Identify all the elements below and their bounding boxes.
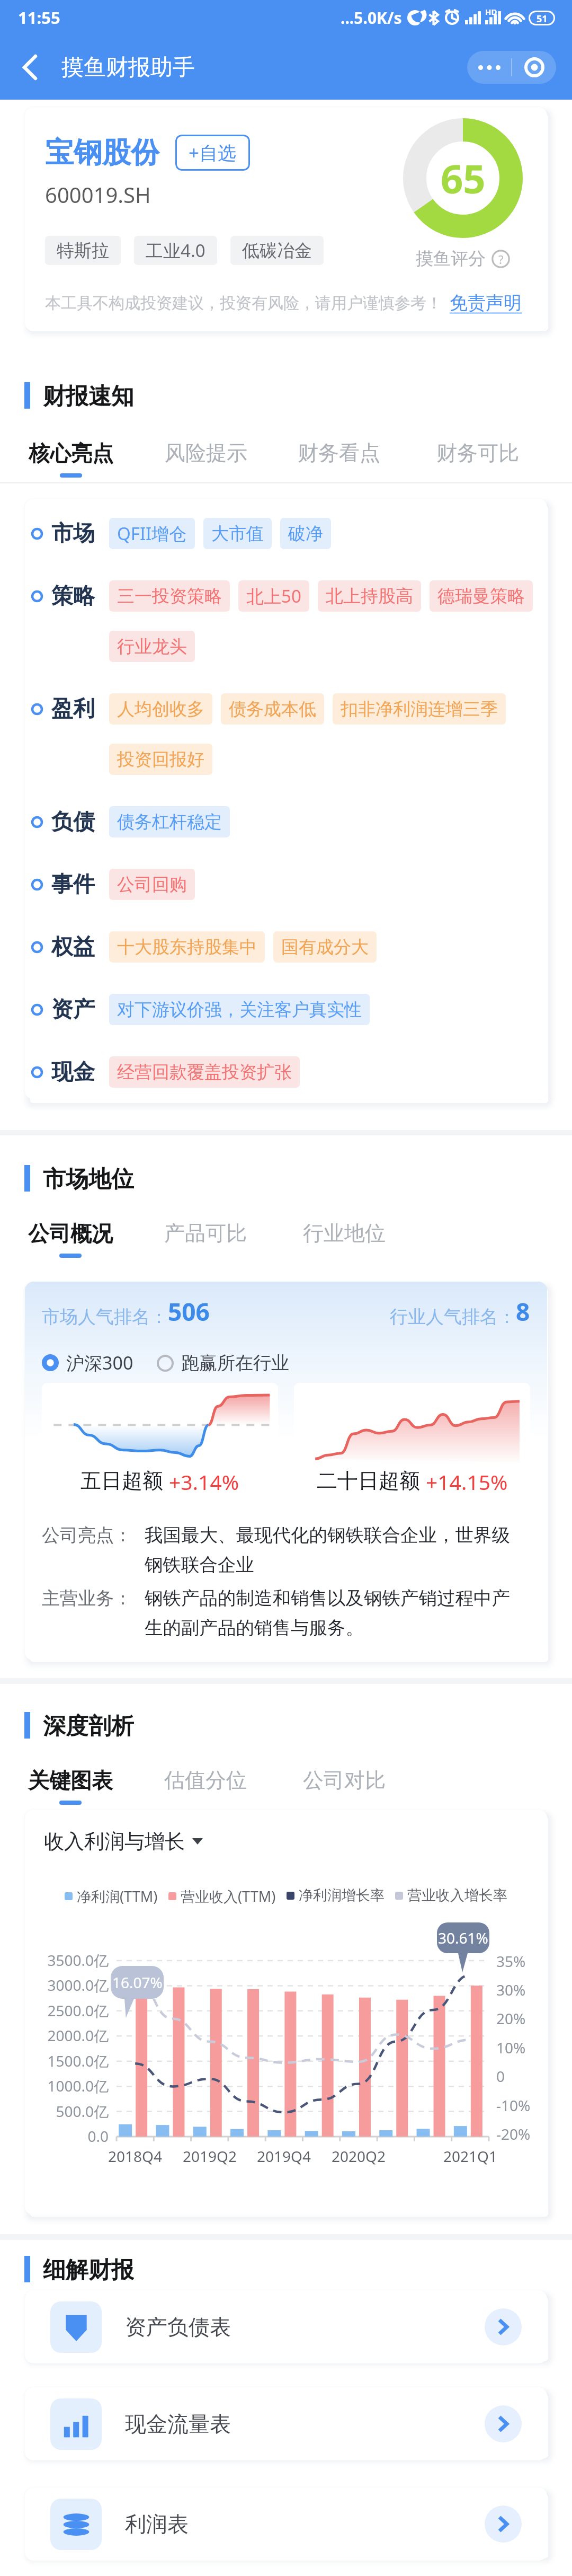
- button[interactable]: QFII增仓: [109, 518, 195, 549]
- staticText: 现金: [51, 1058, 95, 1086]
- staticText: 国有成分大: [281, 936, 369, 958]
- button[interactable]: Help: [491, 250, 510, 268]
- button[interactable]: 沪深300: [42, 1351, 133, 1375]
- button[interactable]: 破净: [280, 518, 331, 549]
- staticText: 2500.0亿: [30, 2000, 109, 2021]
- staticText: 债务杠杆稳定: [117, 811, 222, 833]
- button[interactable]: 二十日超额: [294, 1383, 530, 1503]
- staticText: 低碳冶金: [242, 240, 312, 262]
- staticText: 1000.0亿: [30, 2076, 109, 2096]
- button[interactable]: 扣非净利润连增三季: [333, 693, 506, 725]
- button[interactable]: 德瑞曼策略: [430, 580, 533, 612]
- staticText: 资产负债表: [125, 2314, 231, 2340]
- button[interactable]: 债务成本低: [221, 693, 324, 725]
- staticText: 市场地位: [43, 1165, 134, 1192]
- staticText: 人均创收多: [117, 698, 204, 720]
- button[interactable]: 对下游议价强，关注客户真实性: [109, 994, 370, 1025]
- button[interactable]: More options: [467, 51, 511, 84]
- staticText: 2000.0亿: [30, 2025, 109, 2045]
- staticText: 2019Q2: [178, 2146, 242, 2166]
- button[interactable]: Back: [11, 48, 49, 86]
- staticText: 现金流量表: [125, 2411, 231, 2437]
- staticText: -10%: [496, 2095, 539, 2115]
- staticText: 0: [496, 2066, 539, 2086]
- staticText: 十大股东持股集中: [117, 936, 257, 958]
- button[interactable]: 特斯拉: [45, 236, 121, 265]
- button[interactable]: 三一投资策略: [109, 580, 230, 612]
- staticText: 五日超额: [81, 1468, 163, 1494]
- button[interactable]: 北上持股高: [318, 580, 421, 612]
- button[interactable]: Close: [512, 51, 556, 84]
- staticText: 3000.0亿: [30, 1975, 109, 1995]
- button[interactable]: 经营回款覆盖投资扩张: [109, 1056, 300, 1088]
- button[interactable]: 北上50: [238, 580, 309, 612]
- staticText: 市场: [51, 520, 95, 548]
- staticText: 免责声明: [450, 292, 522, 314]
- staticText: 财务可比: [436, 440, 519, 466]
- staticText: 2021Q1: [439, 2146, 502, 2166]
- staticText: 公司对比: [303, 1767, 386, 1793]
- staticText: 2020Q2: [327, 2146, 390, 2166]
- staticText: 破净: [288, 523, 323, 545]
- staticText: 11:55: [18, 6, 60, 29]
- staticText: 主营业务：: [42, 1587, 145, 1610]
- button[interactable]: +自选: [175, 135, 250, 171]
- staticText: 核心亮点: [29, 440, 113, 466]
- staticText: 对下游议价强，关注客户真实性: [117, 999, 362, 1021]
- staticText: 摸鱼财报助手: [61, 54, 195, 82]
- staticText: 16.07%: [112, 1972, 163, 1992]
- staticText: 35%: [496, 1951, 539, 1971]
- staticText: 2018Q4: [103, 2146, 167, 2166]
- staticText: 506: [168, 1295, 210, 1328]
- staticText: -20%: [496, 2124, 539, 2144]
- staticText: 财报速知: [43, 382, 134, 409]
- staticText: +自选: [189, 140, 237, 165]
- staticText: 30%: [496, 1980, 539, 2000]
- staticText: 盈利: [51, 695, 95, 723]
- button[interactable]: 核心亮点: [2, 440, 140, 482]
- button[interactable]: 五日超额: [42, 1383, 278, 1503]
- staticText: 净利润(TTM): [77, 1886, 158, 1906]
- button[interactable]: 跑赢所在行业: [157, 1352, 289, 1374]
- button[interactable]: 关键图表: [2, 1767, 139, 1810]
- staticText: 500.0亿: [30, 2101, 109, 2121]
- staticText: 8: [516, 1295, 530, 1328]
- button[interactable]: 行业地位: [275, 1220, 413, 1263]
- staticText: 二十日超额: [317, 1468, 420, 1494]
- button[interactable]: 工业4.0: [134, 236, 217, 265]
- button[interactable]: 债务杠杆稳定: [109, 806, 230, 837]
- button[interactable]: 公司概况: [2, 1220, 139, 1263]
- button[interactable]: 资产负债表: [25, 2290, 547, 2363]
- staticText: 投资回报好: [117, 748, 204, 771]
- button[interactable]: 人均创收多: [109, 693, 212, 725]
- button[interactable]: 风险提示: [137, 440, 275, 482]
- button[interactable]: 现金流量表: [25, 2387, 547, 2460]
- button[interactable]: 低碳冶金: [230, 236, 324, 265]
- staticText: 公司概况: [28, 1220, 113, 1247]
- staticText: 跑赢所在行业: [181, 1352, 289, 1374]
- button[interactable]: 十大股东持股集中: [109, 931, 265, 963]
- staticText: 我国最大、最现代化的钢铁联合企业，世界级钢铁联合企业: [145, 1524, 522, 1576]
- staticText: 3500.0亿: [30, 1950, 109, 1970]
- staticText: 北上50: [246, 584, 301, 608]
- button[interactable]: 投资回报好: [109, 744, 212, 775]
- staticText: 公司回购: [117, 874, 187, 896]
- button[interactable]: 行业龙头: [109, 631, 195, 662]
- button[interactable]: 产品可比: [137, 1220, 274, 1263]
- staticText: 负债: [51, 808, 95, 836]
- button[interactable]: 财务可比: [409, 440, 547, 482]
- staticText: 策略: [51, 583, 95, 610]
- button[interactable]: 估值分位: [137, 1767, 274, 1810]
- staticText: 深度剖析: [43, 1712, 134, 1739]
- button[interactable]: 公司回购: [109, 869, 195, 900]
- staticText: 20%: [496, 2008, 539, 2028]
- staticText: 北上持股高: [326, 585, 413, 607]
- button[interactable]: 财务看点: [270, 440, 408, 482]
- button[interactable]: 公司对比: [275, 1767, 413, 1810]
- button[interactable]: 国有成分大: [273, 931, 377, 963]
- button[interactable]: 大市值: [203, 518, 272, 549]
- button[interactable]: 收入利润与增长: [44, 1829, 203, 1854]
- button[interactable]: 利润表: [25, 2487, 547, 2561]
- staticText: 关键图表: [28, 1767, 113, 1794]
- button[interactable]: 免责声明: [450, 292, 522, 314]
